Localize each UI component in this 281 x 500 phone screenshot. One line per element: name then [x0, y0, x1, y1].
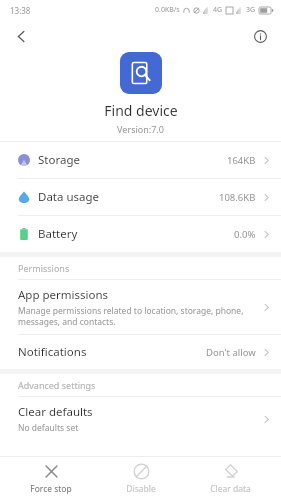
button[interactable]: Notifications — [0, 335, 281, 369]
staticText: Disable — [126, 483, 156, 495]
staticText: Manage permissions related to location, … — [18, 305, 244, 327]
button[interactable]: Clear defaults — [0, 397, 281, 441]
button[interactable]: Back — [6, 21, 36, 51]
staticText: 13:38 — [10, 5, 31, 16]
button[interactable]: App info — [245, 21, 275, 51]
button[interactable]: Battery — [0, 216, 281, 252]
staticText: 0.0KB/s — [155, 5, 180, 15]
staticText: Version:7.0 — [117, 123, 164, 135]
staticText: Data usage — [38, 189, 100, 205]
staticText: Battery — [38, 226, 78, 242]
button[interactable]: App permissions — [0, 280, 281, 334]
staticText: Don't allow — [206, 346, 256, 359]
button[interactable]: Data usage — [0, 179, 281, 215]
staticText: Permissions — [18, 262, 70, 274]
staticText: App permissions — [18, 287, 109, 303]
staticText: Advanced settings — [18, 379, 96, 391]
staticText: 0.0% — [234, 228, 256, 241]
staticText: 4G — [213, 5, 223, 15]
button[interactable]: Storage — [0, 142, 281, 178]
staticText: No defaults set — [18, 422, 79, 434]
button[interactable]: Clear data — [191, 460, 269, 498]
button[interactable]: Disable — [102, 460, 180, 498]
staticText: 164KB — [227, 154, 256, 167]
staticText: Storage — [38, 152, 80, 168]
staticText: Clear data — [210, 483, 251, 495]
staticText: Force stop — [30, 483, 72, 495]
staticText: 3G — [246, 5, 256, 15]
button[interactable]: Force stop — [12, 460, 90, 498]
staticText: 108.6KB — [219, 191, 256, 204]
staticText: Find device — [104, 101, 178, 120]
staticText: Clear defaults — [18, 404, 93, 420]
staticText: Notifications — [18, 344, 87, 360]
